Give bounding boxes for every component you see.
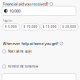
button[interactable]: More information [60,42,63,45]
staticText: $ 15.000 [43,25,57,29]
staticText: $ 10.000 [23,25,37,29]
button[interactable]: Never ask me again [2,50,32,53]
staticText: Pays for [2,19,12,23]
button[interactable]: Remind me tomorrow [2,65,38,68]
staticText: Wherever help at home you get? [2,41,58,46]
button[interactable]: $ 10.000 [21,24,39,30]
button[interactable]: More information [50,3,53,6]
button[interactable]: $ 20.000 [60,24,78,30]
button[interactable]: $ 15.000 [41,24,59,30]
button[interactable]: 10.000 [2,6,76,16]
button[interactable]: $ 5.000 [2,24,20,30]
staticText: Never ask me again [8,50,32,53]
staticText: 10.000 [9,8,20,13]
staticText: $ 20.000 [62,25,76,29]
staticText: Remind me tomorrow [8,65,38,68]
staticText: Financial aid you received? [2,1,48,7]
staticText: $ 5.000 [5,25,17,29]
